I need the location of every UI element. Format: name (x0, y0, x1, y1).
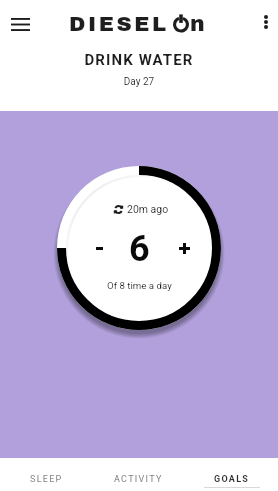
staticText: 20m ago (127, 203, 169, 215)
staticText: 6 (129, 228, 150, 270)
button[interactable]: ACTIVITY (92, 458, 185, 491)
staticText: Of 8 time a day (107, 280, 172, 291)
button[interactable]: Decrease (84, 233, 114, 263)
staticText: DRINK WATER (0, 51, 278, 69)
staticText: GOALS (214, 474, 250, 485)
staticText: Day 27 (0, 76, 278, 88)
staticText: SLEEP (30, 474, 63, 485)
staticText: DIESEL (69, 13, 169, 36)
button[interactable]: Increase (169, 233, 199, 263)
button[interactable]: Menu (5, 9, 35, 39)
button[interactable]: GOALS (185, 458, 278, 491)
button[interactable]: More options (253, 9, 278, 34)
button[interactable]: SLEEP (0, 458, 92, 491)
staticText: ACTIVITY (114, 474, 163, 485)
staticText: n (190, 12, 205, 36)
